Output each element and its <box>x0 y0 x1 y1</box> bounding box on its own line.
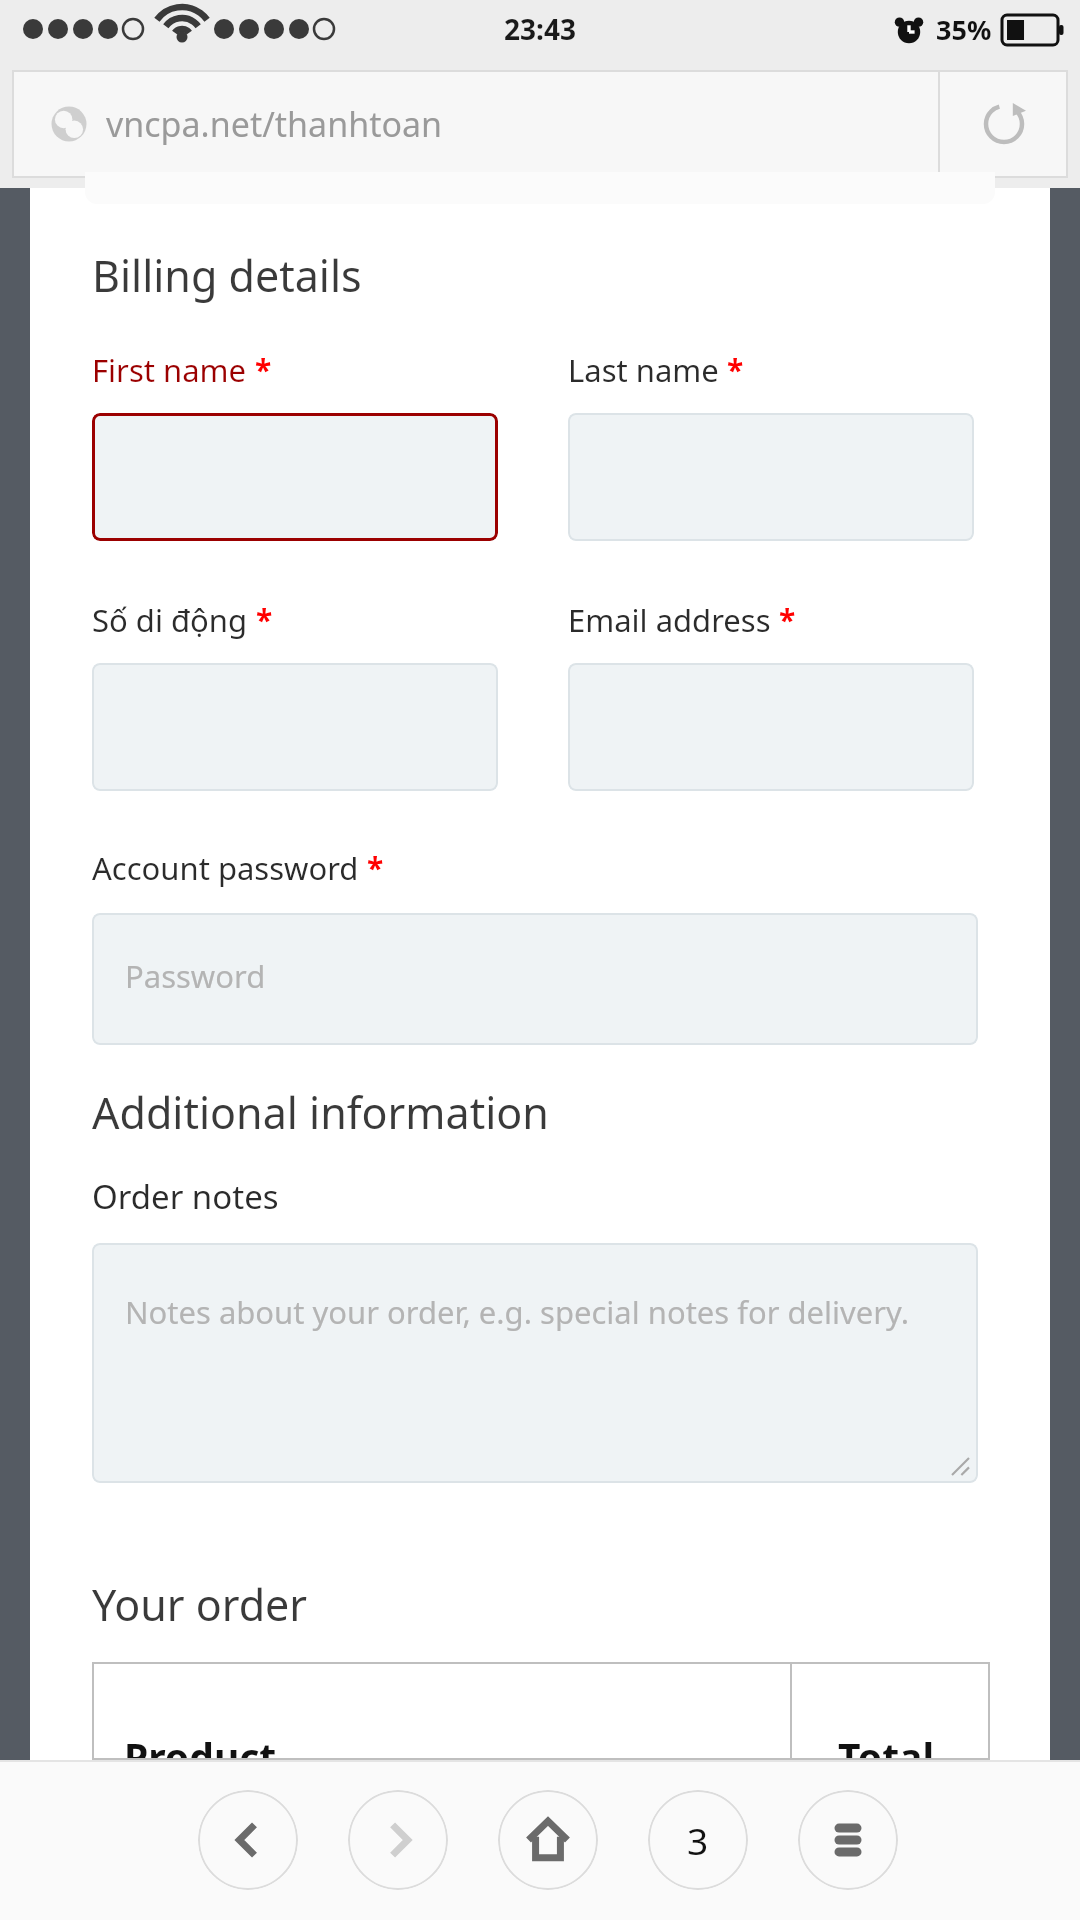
button[interactable]: Back <box>198 1790 298 1890</box>
button[interactable]: vncpa.net/thanhtoan <box>12 70 1068 178</box>
staticText: * <box>255 349 272 390</box>
staticText: Billing details <box>92 246 362 305</box>
staticText: 23:43 <box>504 10 576 48</box>
staticText: * <box>367 847 384 888</box>
staticText: Email address <box>568 599 771 641</box>
button[interactable] <box>568 413 974 541</box>
button[interactable] <box>568 663 974 791</box>
staticText: Your order <box>92 1575 308 1634</box>
staticText: * <box>727 349 744 390</box>
staticText: Notes about your order, e.g. special not… <box>125 1291 909 1333</box>
staticText: Additional information <box>92 1083 549 1142</box>
staticText: * <box>256 599 273 640</box>
staticText: * <box>779 599 796 640</box>
button[interactable] <box>92 663 498 791</box>
button[interactable]: Tabs <box>648 1790 748 1890</box>
staticText: 3 <box>687 1815 709 1865</box>
staticText: First name <box>92 349 247 391</box>
button[interactable]: Notes about your order, e.g. special not… <box>92 1243 978 1483</box>
staticText: Số di động <box>92 599 248 641</box>
button[interactable]: Home <box>498 1790 598 1890</box>
staticText: Last name <box>568 349 719 391</box>
staticText: Password <box>125 955 266 997</box>
staticText: Product <box>124 1730 277 1783</box>
button[interactable]: Product <box>92 1662 990 1760</box>
button[interactable]: Menu <box>798 1790 898 1890</box>
staticText: Total <box>838 1730 935 1783</box>
button[interactable]: Forward <box>348 1790 448 1890</box>
staticText: 35% <box>936 11 992 48</box>
staticText: vncpa.net/thanhtoan <box>106 101 443 147</box>
button[interactable]: Reload <box>940 70 1068 178</box>
button[interactable] <box>92 413 498 541</box>
staticText: Account password <box>92 847 359 889</box>
button[interactable]: Password <box>92 913 978 1045</box>
staticText: Order notes <box>92 1174 279 1219</box>
